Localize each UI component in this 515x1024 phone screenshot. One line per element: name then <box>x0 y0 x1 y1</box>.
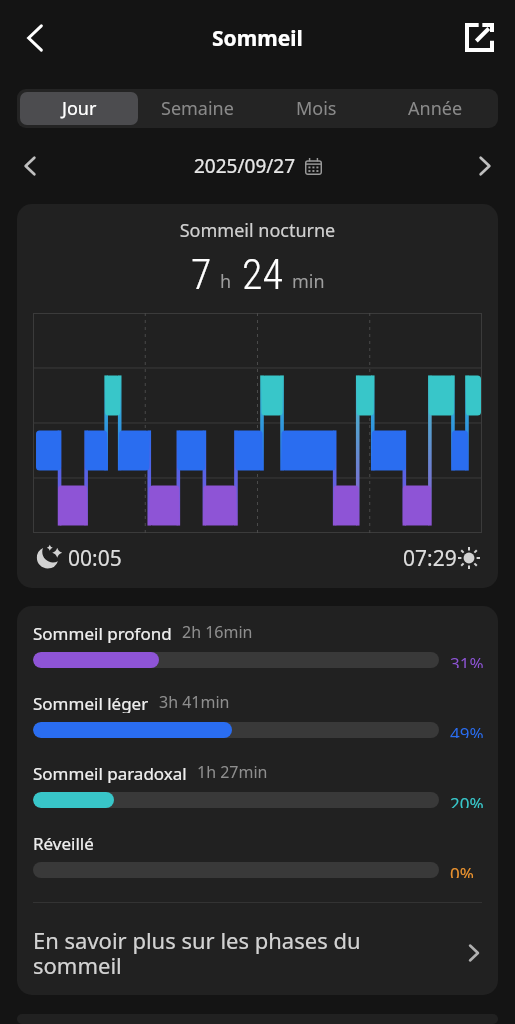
staticText: Sommeil nocturne <box>33 218 482 243</box>
staticText: Réveillé <box>33 832 94 853</box>
button[interactable]: Jour <box>20 92 138 125</box>
button[interactable]: Share <box>455 13 503 61</box>
staticText: 49% <box>450 722 484 738</box>
staticText: min <box>292 269 325 294</box>
button[interactable]: Semaine <box>138 92 257 125</box>
staticText: 7 <box>191 250 212 299</box>
staticText: Sommeil <box>212 24 303 53</box>
button[interactable]: Année <box>376 92 495 125</box>
staticText: En savoir plus sur les phases du sommeil <box>33 925 363 981</box>
staticText: Année <box>408 96 463 121</box>
staticText: 20% <box>450 792 484 808</box>
staticText: 24 <box>242 250 283 299</box>
staticText: 2025/09/27 <box>194 153 296 179</box>
staticText: Semaine <box>161 96 234 121</box>
staticText: Sommeil profond <box>33 622 172 643</box>
staticText: Jour <box>62 96 97 121</box>
staticText: 00:05 <box>68 544 122 573</box>
staticText: 07:29 <box>403 544 457 573</box>
button[interactable]: Mois <box>257 92 376 125</box>
staticText: 2h 16min <box>182 621 253 642</box>
button[interactable]: Previous day <box>8 144 52 188</box>
staticText: 31% <box>450 652 484 668</box>
staticText: 1h 27min <box>197 761 268 782</box>
staticText: Mois <box>296 96 337 121</box>
button[interactable]: Next day <box>463 144 507 188</box>
button[interactable]: Back <box>11 14 59 62</box>
button[interactable]: En savoir plus sur les phases du sommeil <box>17 903 498 995</box>
staticText: 0% <box>450 862 474 878</box>
staticText: Sommeil paradoxal <box>33 762 187 783</box>
staticText: 3h 41min <box>159 691 230 712</box>
staticText: h <box>220 269 232 294</box>
staticText: Sommeil léger <box>33 692 149 713</box>
